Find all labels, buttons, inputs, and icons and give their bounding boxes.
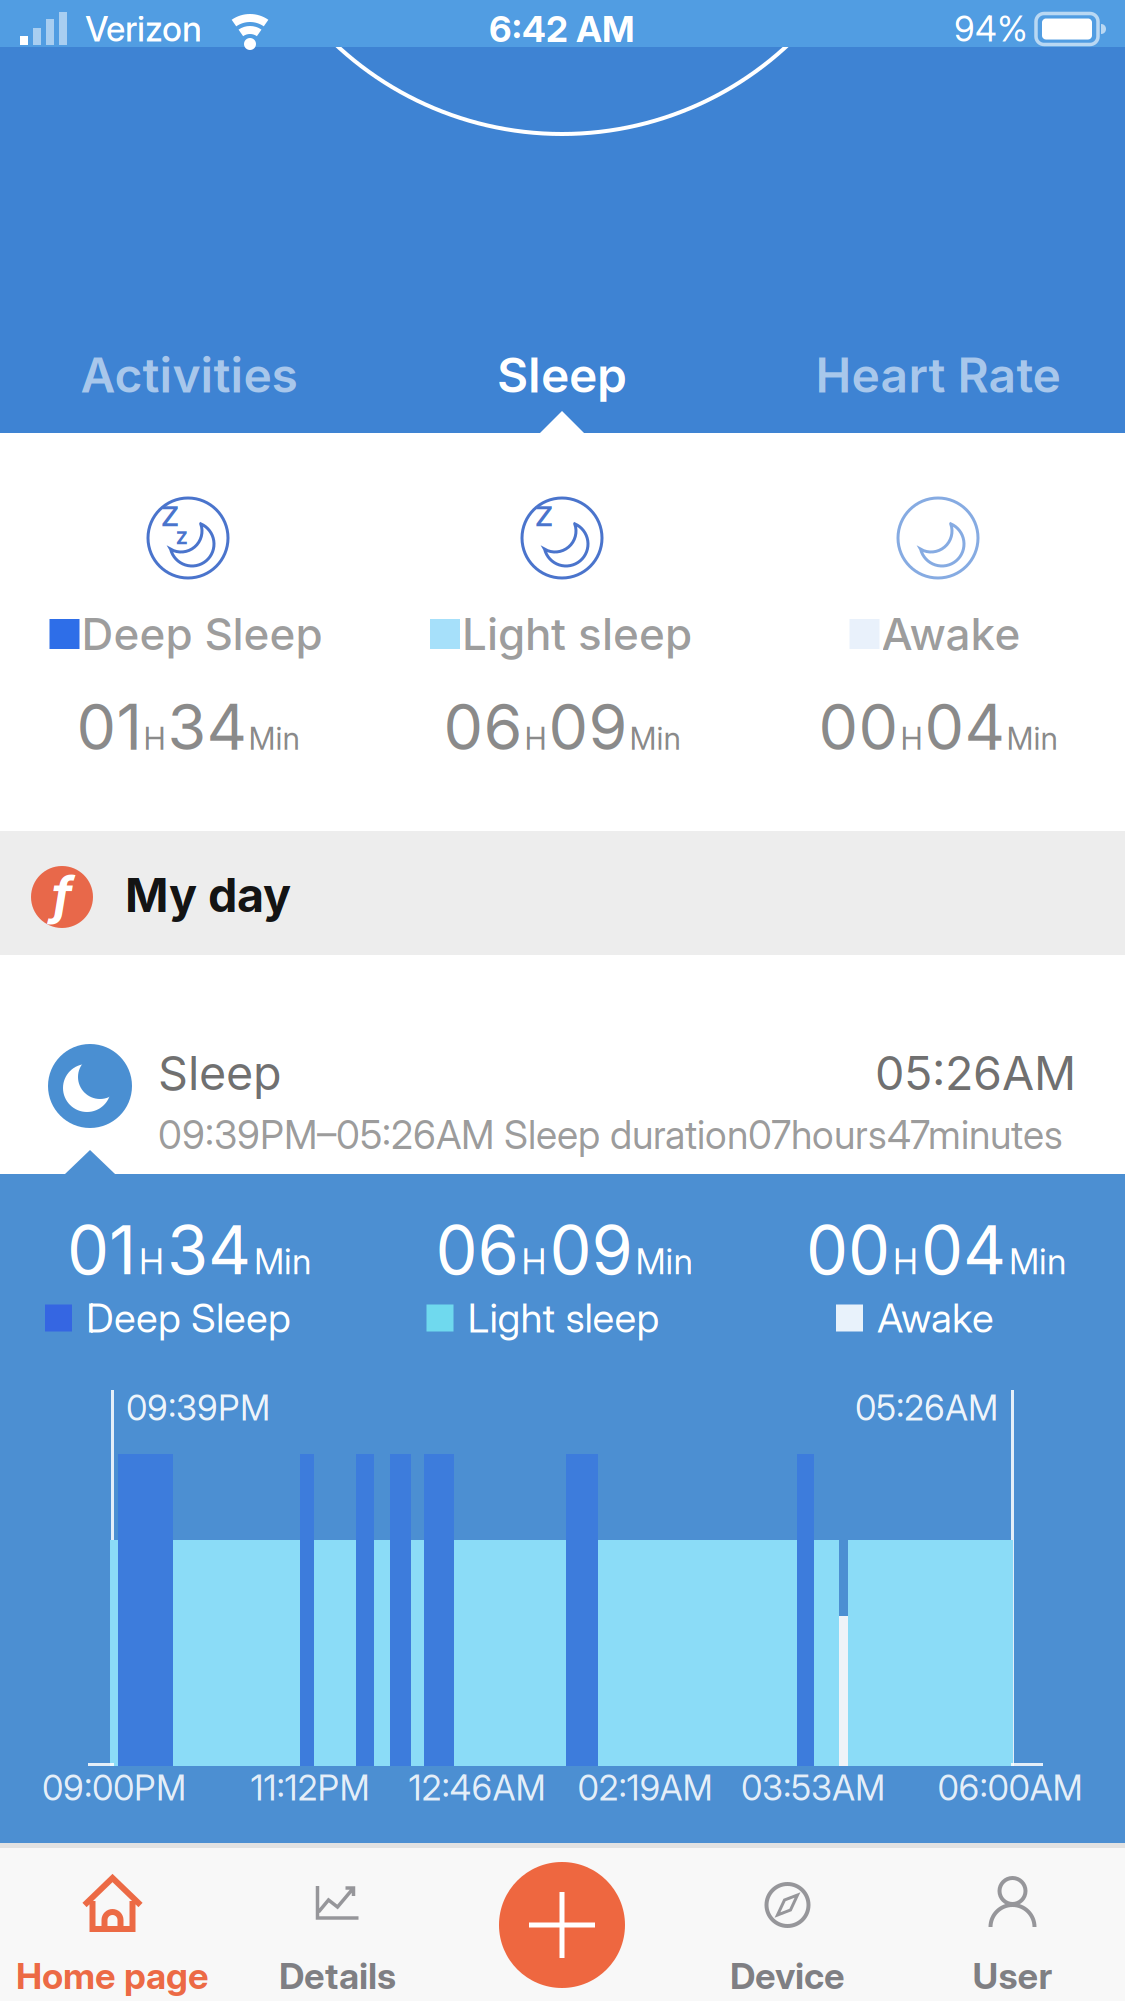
staticText: 00 [818, 690, 898, 764]
staticText: Details [279, 1955, 396, 1997]
staticText: H [524, 721, 546, 757]
staticText: User [972, 1955, 1052, 1997]
button[interactable]: Device [675, 1848, 900, 2001]
staticText: Min [248, 721, 299, 757]
staticText: Activities [80, 347, 297, 403]
button[interactable]: Home page [0, 1848, 225, 2001]
staticText: H [893, 1241, 918, 1282]
staticText: Heart Rate [815, 347, 1060, 403]
staticText: 09 [549, 1211, 632, 1289]
staticText: Light sleep [467, 1294, 659, 1342]
staticText: Z [535, 499, 553, 532]
staticText: 09 [548, 690, 627, 764]
staticText: 06 [443, 690, 522, 764]
staticText: 34 [167, 690, 246, 764]
staticText: 05:26AM [855, 1388, 998, 1428]
staticText: 6:42 AM [489, 8, 635, 50]
staticText: Light sleep [462, 608, 692, 660]
staticText: Sleep [158, 1045, 282, 1101]
staticText: Home page [16, 1955, 209, 1997]
staticText: H [139, 1241, 164, 1282]
staticText: 34 [167, 1211, 251, 1289]
staticText: 01 [76, 690, 141, 764]
staticText: 00 [806, 1211, 890, 1289]
staticText: 11:12PM [250, 1768, 369, 1808]
staticText: Awake [881, 608, 1020, 660]
button[interactable]: User [900, 1848, 1125, 2001]
staticText: H [521, 1241, 546, 1282]
staticText: 04 [921, 1211, 1006, 1289]
staticText: Min [254, 1241, 311, 1282]
staticText: Sleep [497, 347, 627, 403]
staticText: f [51, 865, 72, 925]
staticText: Min [1009, 1241, 1066, 1282]
staticText: 02:19AM [577, 1768, 712, 1808]
staticText: 12:46AM [408, 1768, 545, 1808]
staticText: Awake [877, 1294, 994, 1342]
staticText: 01 [67, 1211, 136, 1289]
button[interactable]: Activities [80, 347, 297, 403]
staticText: Deep Sleep [81, 608, 322, 660]
staticText: Verizon [85, 9, 202, 49]
staticText: H [900, 721, 922, 757]
staticText: 94% [954, 9, 1028, 49]
staticText: My day [125, 867, 291, 923]
staticText: 06 [435, 1211, 518, 1289]
staticText: z [175, 523, 188, 549]
staticText: Min [629, 721, 680, 757]
button[interactable]: Details [225, 1848, 450, 2001]
staticText: Min [635, 1241, 692, 1282]
staticText: 04 [924, 690, 1004, 764]
staticText: 09:39PM–05:26AM Sleep duration07hours47m… [158, 1112, 1063, 1158]
staticText: 09:00PM [42, 1768, 186, 1808]
staticText: 03:53AM [741, 1768, 885, 1808]
staticText: H [143, 721, 165, 757]
staticText: 09:39PM [126, 1388, 270, 1428]
button[interactable]: Heart Rate [815, 347, 1060, 403]
staticText: Deep Sleep [86, 1294, 291, 1342]
button[interactable]: Sleep [497, 347, 627, 403]
staticText: Min [1006, 721, 1057, 757]
button[interactable]: Sleep [0, 955, 1125, 1174]
button[interactable] [499, 1862, 625, 1988]
staticText: 06:00AM [937, 1768, 1082, 1808]
staticText: 05:26AM [875, 1045, 1076, 1101]
staticText: Z [161, 499, 179, 532]
staticText: Device [730, 1955, 845, 1997]
